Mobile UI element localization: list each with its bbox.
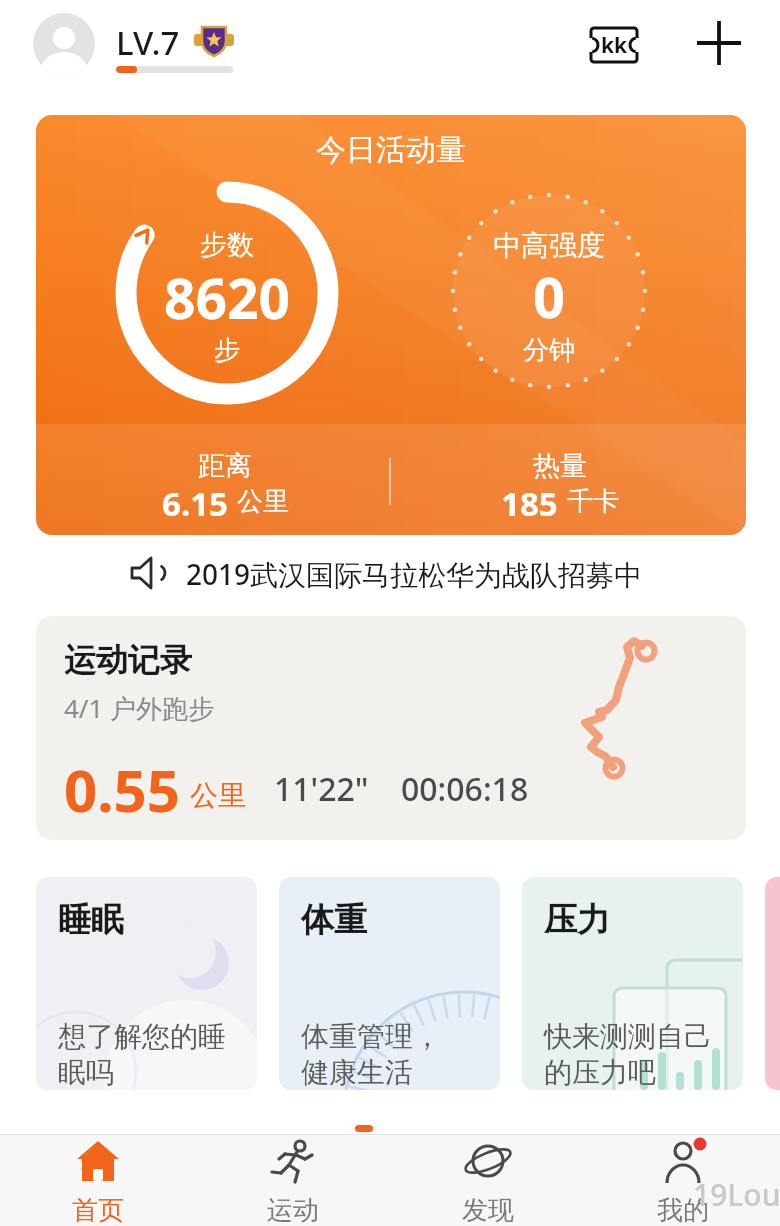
staticText: 快来测测自己 的压力吧	[544, 1019, 712, 1090]
staticText: 发现	[462, 1194, 514, 1226]
staticText: 4/1 户外跑步	[64, 690, 215, 726]
staticText: 首页	[72, 1194, 124, 1226]
button[interactable]: 2019武汉国际马拉松华为战队招募中	[128, 552, 643, 596]
staticText: 11'22"	[274, 767, 369, 811]
staticText: 2019武汉国际马拉松华为战队招募中	[186, 555, 643, 593]
staticText: 公里	[190, 778, 246, 813]
staticText: 我的	[657, 1194, 709, 1226]
staticText: 想了解您的睡 眠吗	[58, 1019, 226, 1090]
button[interactable]: 运动	[195, 1134, 390, 1226]
staticText: 0	[533, 258, 566, 324]
staticText: 6.15	[162, 481, 228, 521]
staticText: kk	[601, 31, 628, 60]
button[interactable]: LV.7	[116, 20, 234, 62]
staticText: LV.7	[116, 20, 180, 62]
button[interactable]: 首页	[0, 1134, 195, 1226]
staticText: 距离	[198, 449, 252, 479]
staticText: 步	[214, 334, 240, 364]
staticText: 分钟	[523, 334, 575, 364]
staticText: 体重	[301, 899, 367, 941]
button[interactable]: 体重	[279, 877, 500, 1090]
button[interactable]: 压力	[522, 877, 743, 1090]
staticText: 00:06:18	[401, 767, 529, 811]
staticText: 热量	[533, 449, 587, 479]
staticText: 中高强度	[493, 228, 605, 260]
staticText: 19Lou	[693, 1174, 780, 1215]
button[interactable]: 睡眠	[36, 877, 257, 1090]
staticText: 体重管理， 健康生活	[301, 1019, 441, 1090]
button[interactable]: 发现	[390, 1134, 585, 1226]
staticText: 千卡	[567, 485, 619, 518]
staticText: 运动记录	[64, 640, 192, 680]
staticText: 睡眠	[58, 899, 124, 941]
button[interactable]	[695, 19, 743, 67]
button[interactable]	[33, 13, 95, 75]
button[interactable]: 运动记录	[36, 616, 746, 840]
staticText: 0.55	[64, 750, 180, 820]
staticText: 运动	[267, 1194, 319, 1226]
staticText: 步数	[200, 228, 254, 260]
staticText: 今日活动量	[316, 131, 466, 169]
button[interactable]: 我的	[585, 1134, 780, 1226]
staticText: 185	[501, 481, 558, 521]
staticText: 压力	[544, 899, 610, 941]
staticText: 8620	[164, 260, 290, 322]
button[interactable]: 今日活动量	[36, 115, 746, 535]
staticText: 公里	[237, 485, 289, 518]
button[interactable]: kk	[586, 22, 642, 68]
